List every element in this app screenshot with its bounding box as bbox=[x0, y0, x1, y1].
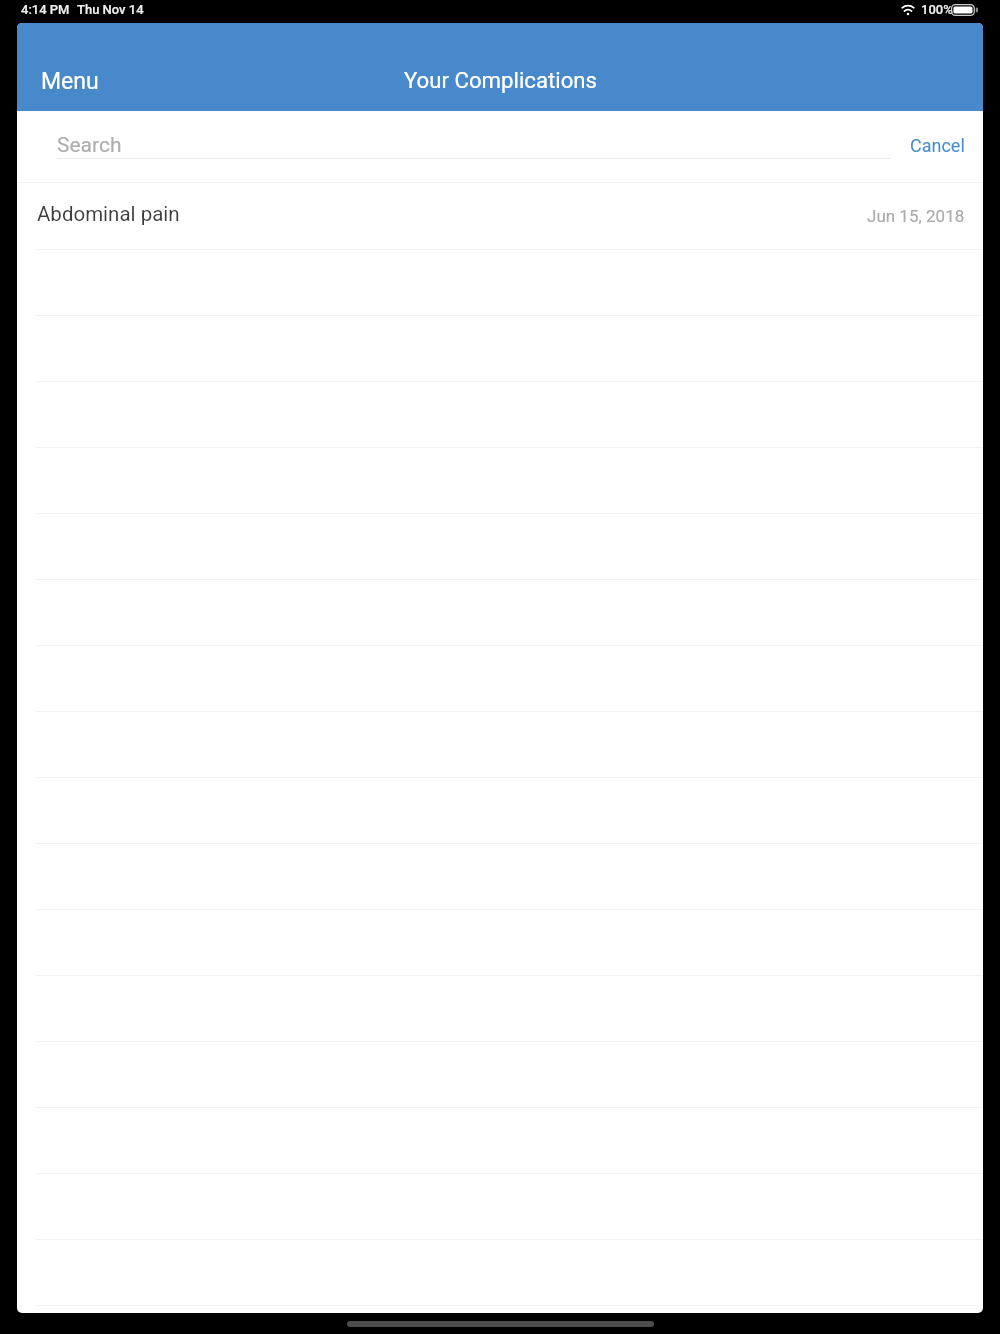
staticText: Abdominal pain bbox=[37, 202, 180, 226]
other: Wi-Fi bbox=[900, 0, 916, 20]
other: Battery full bbox=[951, 4, 978, 16]
staticText: Cancel bbox=[910, 135, 965, 156]
staticText: Your Complications bbox=[404, 67, 598, 93]
button[interactable]: Abdominal pain bbox=[17, 183, 983, 249]
staticText: 100% bbox=[921, 2, 953, 17]
staticText: Menu bbox=[41, 68, 99, 95]
staticText: 4:14 PM bbox=[21, 2, 70, 17]
staticText: Search bbox=[57, 133, 122, 158]
button[interactable]: Cancel bbox=[894, 127, 981, 164]
staticText: Thu Nov 14 bbox=[77, 2, 144, 17]
staticText: Jun 15, 2018 bbox=[867, 206, 965, 226]
button[interactable]: Search bbox=[53, 119, 894, 167]
button[interactable]: Menu bbox=[26, 61, 114, 102]
